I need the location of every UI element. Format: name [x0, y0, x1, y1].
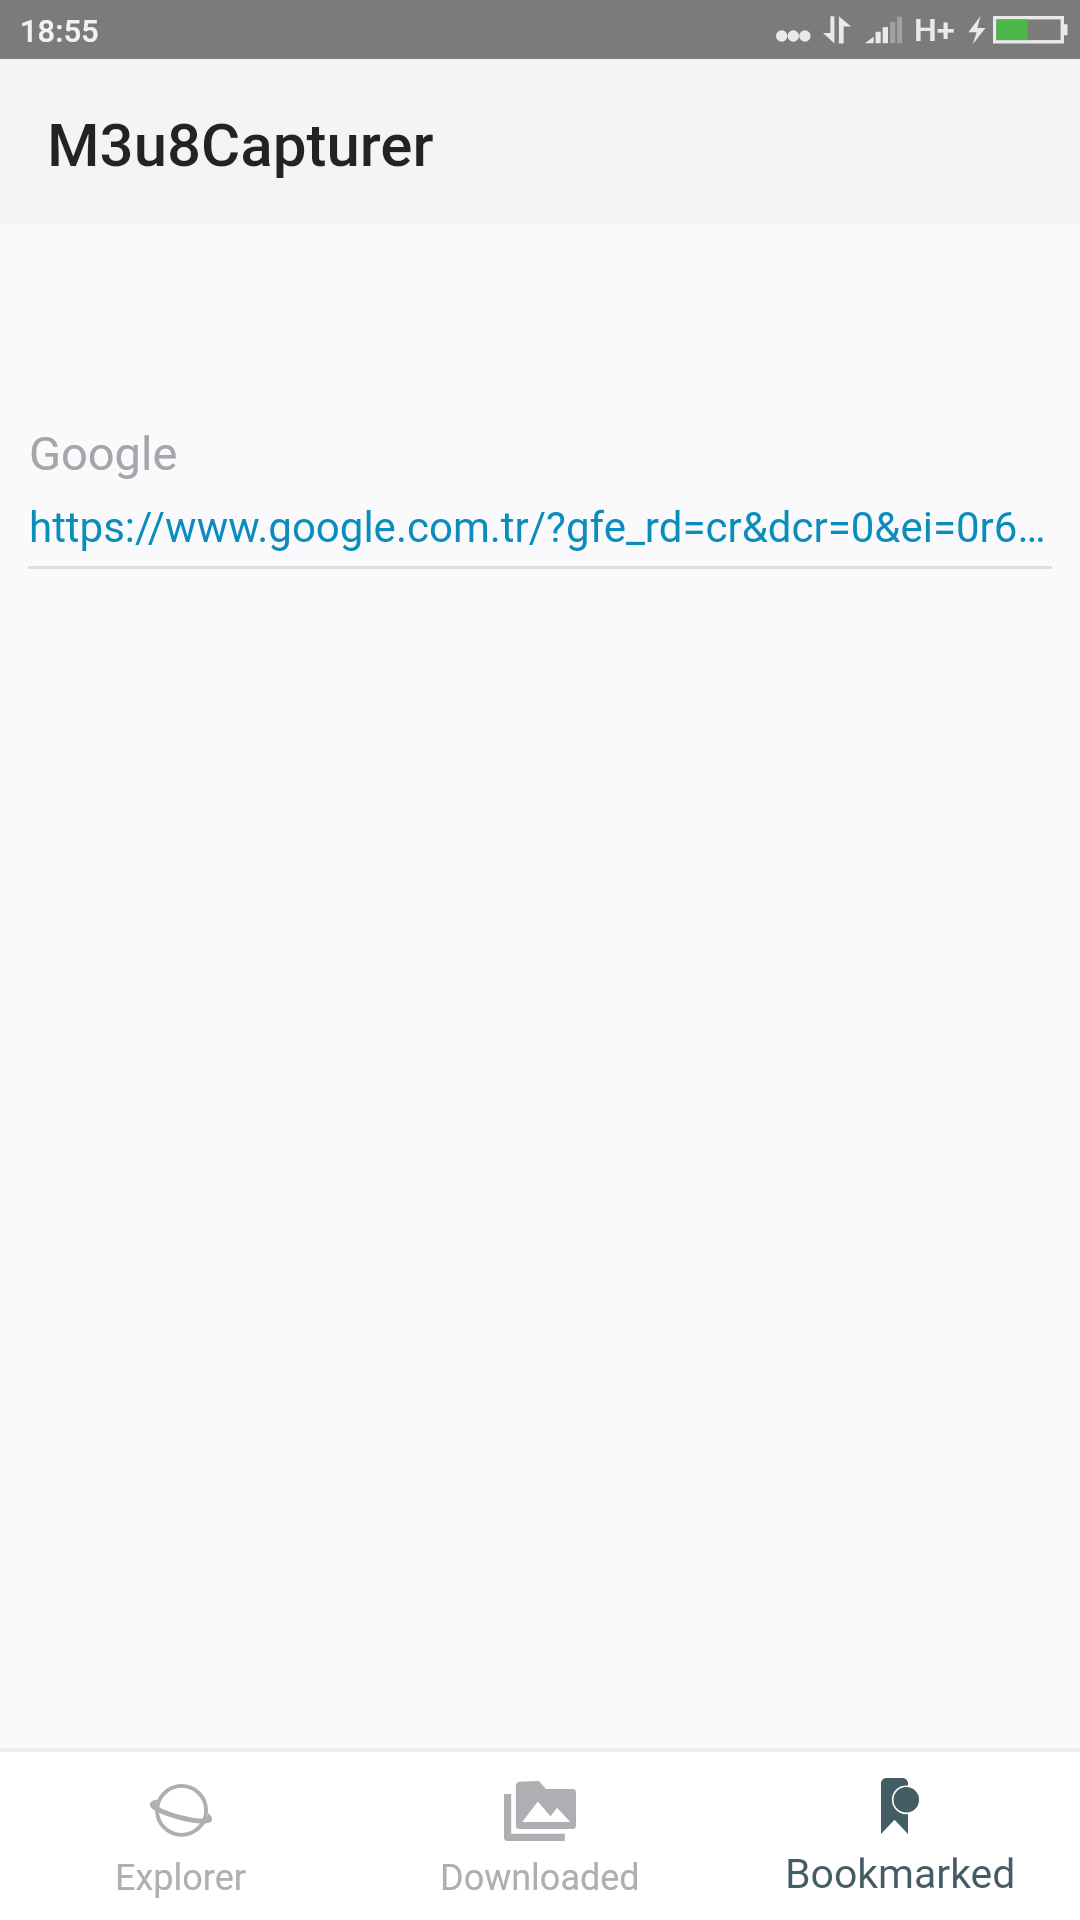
other: Downloaded	[504, 1781, 576, 1841]
staticText: H+	[914, 11, 955, 49]
button[interactable]: Google	[0, 426, 1080, 569]
staticText: M3u8Capturer	[47, 110, 434, 180]
other: Explorer	[149, 1784, 212, 1837]
button[interactable]: Bookmarked	[720, 1752, 1080, 1920]
staticText: https://www.google.com.tr/?gfe_rd=cr&dcr…	[29, 503, 1046, 552]
other: Bookmarked	[881, 1778, 920, 1834]
staticText: Bookmarked	[785, 1850, 1016, 1898]
staticText: Downloaded	[440, 1857, 640, 1899]
staticText: Explorer	[115, 1857, 246, 1899]
staticText: 18:55	[20, 13, 99, 49]
staticText: Google	[29, 426, 178, 481]
button[interactable]: Downloaded	[360, 1752, 720, 1920]
button[interactable]: Explorer	[0, 1752, 360, 1920]
